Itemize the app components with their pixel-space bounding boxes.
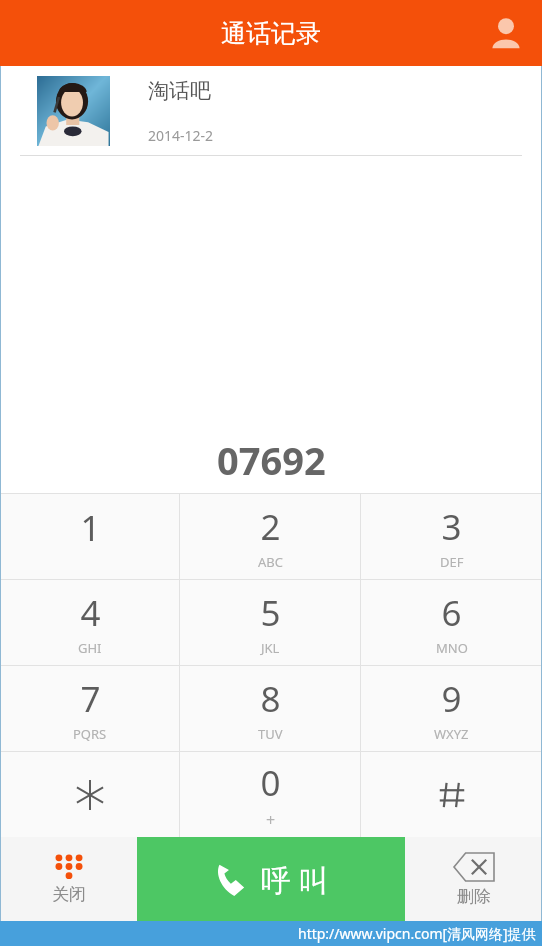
staticText: 4 [80, 589, 101, 637]
staticText: 通话记录 [221, 18, 321, 49]
staticText: 呼 叫 [261, 859, 329, 900]
staticText: 7 [80, 675, 101, 723]
button[interactable]: 4 [0, 580, 180, 665]
staticText: 07692 [217, 434, 326, 486]
staticText: ABC [258, 553, 283, 571]
staticText: MNO [436, 639, 468, 657]
staticText: http://www.vipcn.com[清风网络]提供 [298, 924, 536, 943]
staticText: 3 [441, 503, 462, 551]
button[interactable]: 1 [0, 494, 180, 579]
staticText: 2014-12-2 [148, 126, 214, 145]
button[interactable]: 8 [180, 666, 361, 751]
staticText: TUV [258, 725, 283, 743]
button[interactable]: 淘话吧 [0, 66, 542, 156]
staticText: 8 [260, 675, 281, 723]
staticText: 淘话吧 [148, 78, 211, 104]
button[interactable]: 删除 [405, 837, 542, 921]
button[interactable] [361, 752, 542, 837]
staticText: 9 [441, 675, 462, 723]
staticText: 删除 [457, 886, 491, 907]
staticText: WXYZ [434, 725, 469, 743]
staticText: 6 [441, 589, 462, 637]
staticText: JKL [261, 639, 280, 657]
button[interactable]: 3 [361, 494, 542, 579]
staticText: 5 [260, 589, 281, 637]
staticText: + [266, 809, 276, 831]
staticText: 0 [260, 759, 281, 807]
button[interactable] [0, 752, 180, 837]
button[interactable]: 呼 叫 [137, 837, 405, 921]
button[interactable]: Profile [480, 7, 532, 59]
staticText: 2 [260, 503, 281, 551]
button[interactable]: 5 [180, 580, 361, 665]
button[interactable]: 关闭 [0, 837, 137, 921]
staticText: 关闭 [52, 884, 86, 905]
button[interactable]: 9 [361, 666, 542, 751]
staticText: PQRS [73, 725, 107, 743]
button[interactable]: 2 [180, 494, 361, 579]
button[interactable]: 0 [180, 752, 361, 837]
staticText: 1 [80, 504, 101, 552]
staticText: GHI [78, 639, 102, 657]
button[interactable]: 6 [361, 580, 542, 665]
staticText: DEF [440, 553, 464, 571]
button[interactable]: 7 [0, 666, 180, 751]
